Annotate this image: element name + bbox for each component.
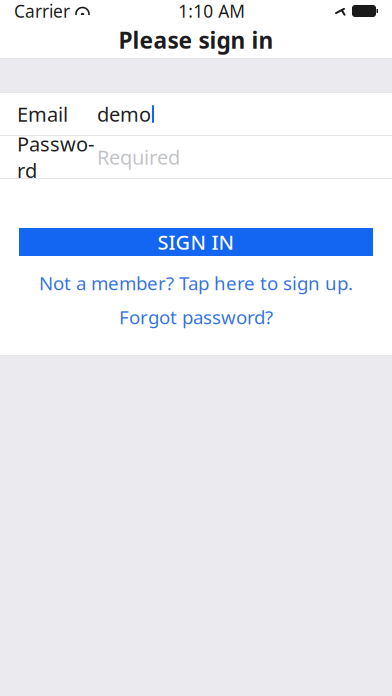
staticText: Not a member? Tap here to sign up. [39,271,353,295]
button[interactable]: SIGN IN [19,228,373,256]
staticText: Forgot password? [119,305,273,329]
staticText: demo [97,101,151,127]
button[interactable]: Not a member? Tap here to sign up. [0,272,392,294]
staticText: Required [97,144,180,170]
button[interactable]: Forgot password? [0,306,392,328]
staticText: Email [17,101,68,127]
staticText: Password [17,130,94,183]
staticText: Carrier [14,0,70,22]
staticText: SIGN IN [157,229,234,255]
staticText: 1:10 AM [178,0,245,22]
staticText: Please sign in [118,25,273,55]
